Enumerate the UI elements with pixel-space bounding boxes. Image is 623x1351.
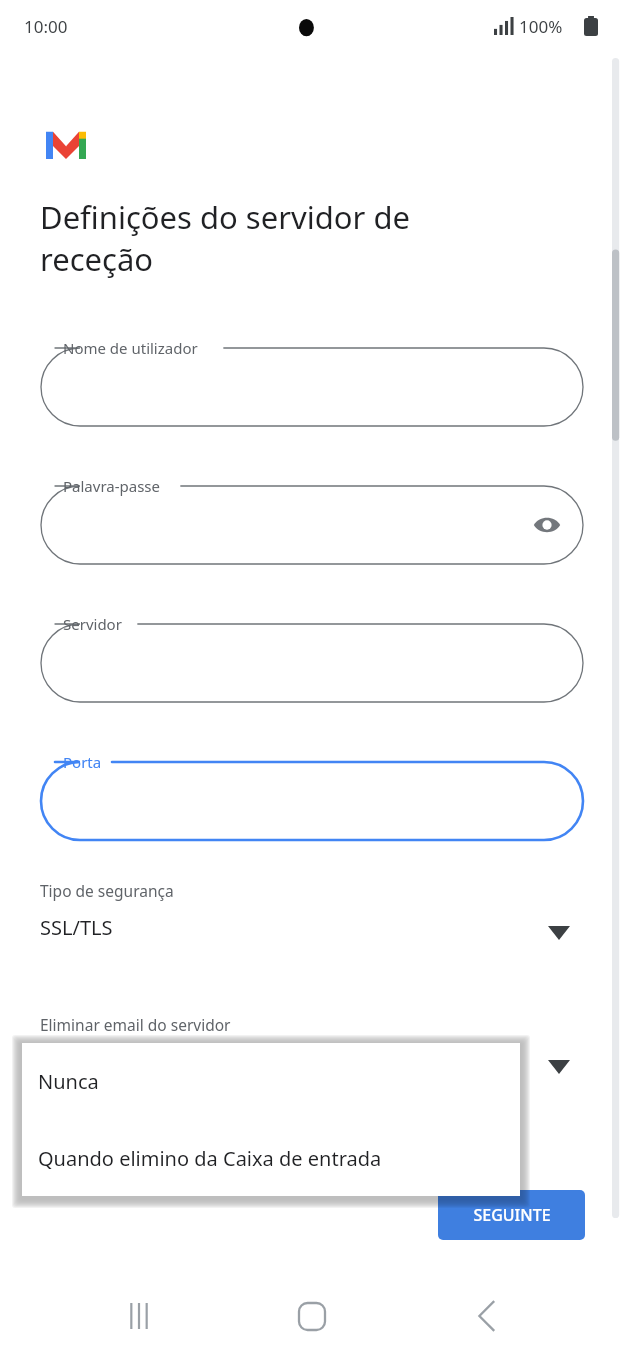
button[interactable]: Servidor	[41, 624, 583, 702]
staticText: 10:00	[24, 15, 68, 38]
button[interactable]: SEGUINTE	[438, 1190, 585, 1240]
staticText: Eliminar email do servidor	[40, 1014, 231, 1035]
staticText: 100%	[519, 15, 563, 38]
button[interactable]: Tipo de segurança	[40, 880, 583, 962]
button[interactable]: Porta	[41, 762, 583, 840]
staticText: Quando elimino da Caixa de entrada	[38, 1145, 382, 1172]
staticText: receção	[40, 238, 154, 280]
button[interactable]: Mostrar palavra-passe	[525, 503, 569, 547]
staticText: Servidor	[63, 614, 122, 634]
staticText: SSL/TLS	[40, 914, 113, 941]
staticText: Nome de utilizador	[63, 338, 198, 358]
button[interactable]: Nome de utilizador	[41, 348, 583, 426]
staticText: Definições do servidor de	[40, 196, 410, 238]
button[interactable]: Palavra-passe	[41, 486, 583, 564]
staticText: Tipo de segurança	[40, 880, 174, 901]
staticText: Palavra-passe	[63, 476, 161, 496]
staticText: Nunca	[38, 1068, 99, 1095]
button[interactable]: Recentes	[108, 1291, 170, 1341]
button[interactable]: Quando elimino da Caixa de entrada	[22, 1120, 520, 1196]
button[interactable]: Nunca	[22, 1043, 520, 1120]
button[interactable]: Eliminar email do servidor	[40, 1014, 583, 1096]
staticText: Porta	[63, 752, 102, 772]
button[interactable]: Voltar	[456, 1291, 518, 1341]
staticText: SEGUINTE	[473, 1204, 551, 1226]
button[interactable]: Início	[281, 1291, 343, 1341]
